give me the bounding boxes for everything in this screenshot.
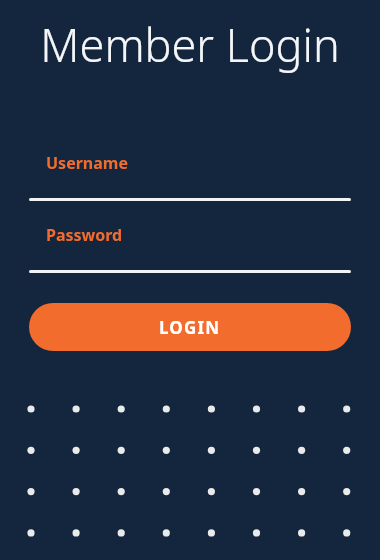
button[interactable]: Username [29, 152, 351, 201]
staticText: Member Login [0, 14, 380, 75]
button[interactable]: LOGIN [29, 303, 351, 351]
staticText: LOGIN [159, 316, 221, 339]
button[interactable]: Password [29, 224, 351, 273]
staticText: Password [46, 224, 123, 246]
staticText: Username [46, 152, 128, 174]
